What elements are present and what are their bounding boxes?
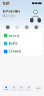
button[interactable]: Controls	[1, 47, 42, 55]
staticText: AirPods Max	[2, 10, 19, 13]
button[interactable]: Apps	[18, 85, 25, 92]
button[interactable]: Colour option	[34, 25, 38, 29]
staticText: More	[27, 88, 31, 90]
button[interactable]: Colour option	[25, 25, 29, 29]
staticText: 9:41	[2, 1, 9, 6]
button[interactable]: Colour option	[6, 25, 10, 29]
staticText: Battery	[9, 34, 19, 37]
button[interactable]: Account	[33, 10, 38, 14]
button[interactable]: More	[25, 85, 33, 92]
staticText: Home	[4, 88, 8, 90]
staticText: Midnight	[2, 14, 15, 18]
button[interactable]: Home	[2, 85, 10, 92]
staticText: Shop	[12, 88, 16, 90]
staticText: Controls	[9, 50, 21, 53]
button[interactable]: Shop	[10, 85, 18, 92]
button[interactable]: Colour option	[15, 25, 19, 29]
button[interactable]: Search	[34, 85, 42, 92]
button[interactable]: Audio	[1, 39, 42, 47]
staticText: Apps	[19, 88, 23, 90]
button[interactable]: Battery	[1, 31, 42, 39]
staticText: Audio	[9, 42, 18, 45]
